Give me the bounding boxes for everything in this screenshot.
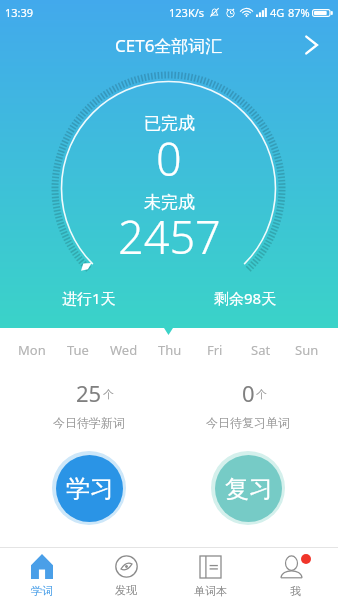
staticText: 复习 bbox=[225, 474, 273, 504]
button[interactable]: 复习 bbox=[211, 451, 285, 525]
staticText: Thu bbox=[158, 341, 182, 357]
button[interactable]: Sat bbox=[238, 341, 283, 357]
staticText: 学词 bbox=[31, 584, 53, 598]
button[interactable]: CET6全部词汇 bbox=[0, 24, 338, 66]
staticText: 123K/s bbox=[169, 5, 205, 20]
staticText: Wed bbox=[110, 341, 138, 357]
staticText: 2457 bbox=[118, 206, 221, 267]
staticText: 进行1天 bbox=[62, 288, 116, 308]
button[interactable]: Wed bbox=[101, 341, 146, 357]
button[interactable]: 我 bbox=[253, 552, 338, 600]
staticText: Fri bbox=[207, 341, 223, 357]
staticText: 剩余98天 bbox=[214, 288, 277, 308]
staticText: CET6全部词汇 bbox=[115, 34, 223, 57]
button[interactable]: Sun bbox=[284, 341, 329, 357]
staticText: 0 bbox=[242, 378, 255, 408]
staticText: 0 bbox=[156, 128, 182, 189]
button[interactable]: 0 bbox=[198, 378, 298, 438]
staticText: Tue bbox=[67, 341, 89, 357]
staticText: 13:39 bbox=[5, 5, 34, 20]
button[interactable]: 单词本 bbox=[168, 552, 253, 600]
button[interactable]: Fri bbox=[192, 341, 237, 357]
staticText: 学习 bbox=[66, 474, 114, 504]
button[interactable]: Mon bbox=[9, 341, 54, 357]
staticText: 个 bbox=[256, 387, 267, 401]
staticText: Mon bbox=[18, 341, 46, 357]
staticText: 个 bbox=[103, 387, 114, 401]
staticText: 未完成 bbox=[144, 192, 195, 213]
staticText: 今日待复习单词 bbox=[206, 415, 290, 430]
staticText: 单词本 bbox=[194, 584, 227, 598]
button[interactable]: 学习 bbox=[52, 451, 126, 525]
staticText: 25 bbox=[76, 378, 102, 408]
staticText: 今日待学新词 bbox=[53, 415, 125, 430]
staticText: Sat bbox=[251, 341, 271, 357]
staticText: 已完成 bbox=[144, 113, 195, 134]
staticText: 4G bbox=[270, 5, 285, 20]
staticText: 87% bbox=[288, 5, 310, 20]
staticText: 我 bbox=[290, 584, 301, 598]
button[interactable]: 25 bbox=[39, 378, 139, 438]
other: Open word book bbox=[305, 35, 318, 55]
button[interactable]: Thu bbox=[147, 341, 192, 357]
button[interactable]: 发现 bbox=[84, 552, 168, 600]
button[interactable]: Tue bbox=[55, 341, 100, 357]
staticText: Sun bbox=[295, 341, 319, 357]
staticText: 发现 bbox=[115, 583, 137, 597]
button[interactable]: 学词 bbox=[0, 552, 84, 600]
